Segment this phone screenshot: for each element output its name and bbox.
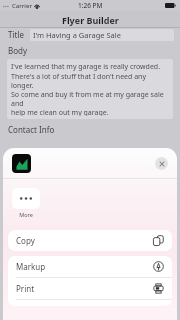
staticText: 1:26 PM: [78, 1, 103, 10]
button[interactable]: I've learned that my garage is really cr…: [7, 59, 173, 119]
staticText: Markup: [16, 261, 46, 272]
staticText: I'm Having a Garage Sale: [33, 30, 121, 40]
button[interactable]: Print: [8, 278, 172, 299]
staticText: Flyer Builder: [62, 14, 119, 26]
staticText: Body: [8, 45, 28, 56]
staticText: Copy: [16, 235, 35, 246]
button[interactable]: Copy: [8, 230, 172, 251]
staticText: Carrier: [12, 2, 32, 10]
staticText: I've learned that my garage is really cr…: [11, 62, 161, 72]
staticText: Title: [8, 29, 24, 40]
button[interactable]: App icon: [12, 154, 31, 173]
button[interactable]: Close: [155, 157, 168, 170]
staticText: So come and buy it from me at my garage …: [11, 90, 169, 108]
button[interactable]: More: [12, 188, 40, 209]
staticText: Contact Info: [8, 124, 55, 135]
button[interactable]: Markup: [8, 256, 172, 277]
staticText: More: [19, 211, 33, 218]
staticText: Print: [16, 283, 35, 294]
button[interactable]: I'm Having a Garage Sale: [30, 29, 174, 41]
staticText: help me clean out my garage.: [11, 108, 109, 116]
staticText: There's a lot of stuff that I don't need…: [11, 72, 169, 90]
